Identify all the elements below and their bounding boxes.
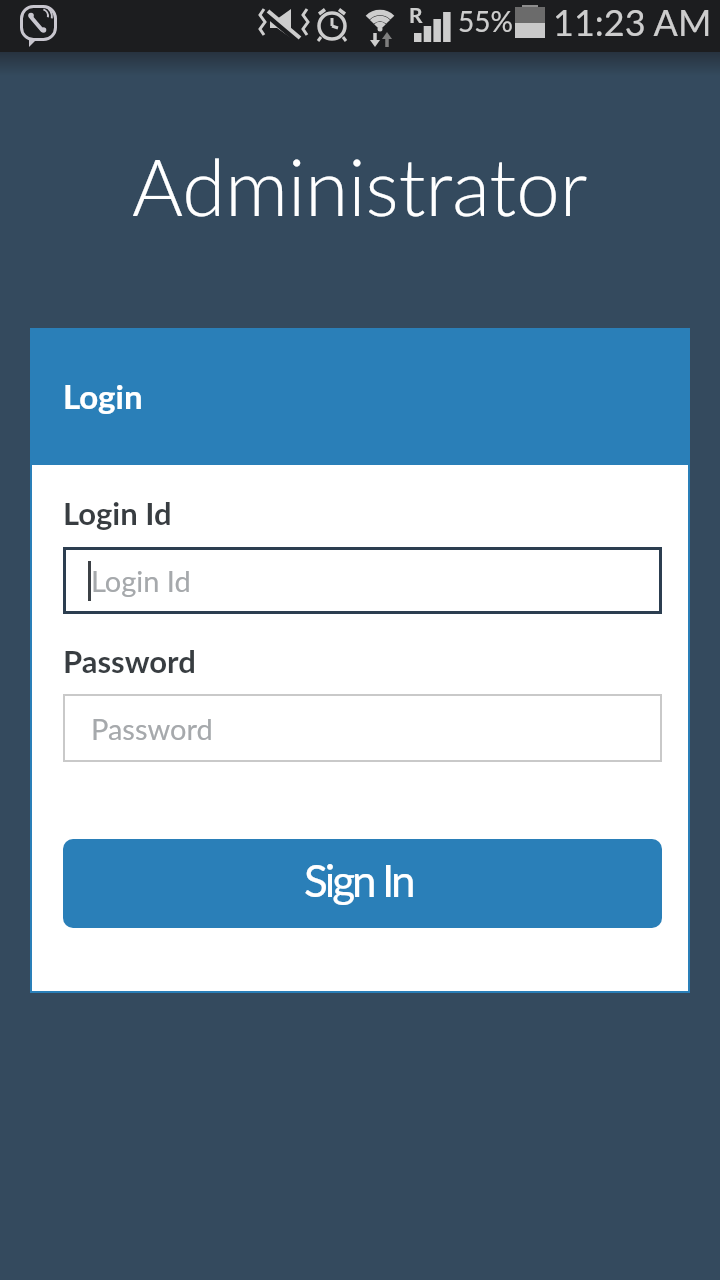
button[interactable]: Password	[63, 694, 662, 762]
staticText: Administrator	[132, 139, 588, 233]
staticText: 55%	[458, 4, 513, 38]
staticText: Password	[63, 642, 196, 679]
staticText: Sign In	[304, 854, 413, 907]
button[interactable]: Login Id	[63, 547, 662, 614]
staticText: R	[409, 2, 423, 27]
staticText: 11:23 AM	[553, 0, 712, 43]
staticText: Login Id	[63, 494, 172, 531]
button[interactable]: Sign In	[63, 839, 662, 928]
staticText: Login Id	[91, 563, 191, 598]
staticText: Password	[91, 711, 213, 746]
staticText: Login	[63, 376, 143, 416]
